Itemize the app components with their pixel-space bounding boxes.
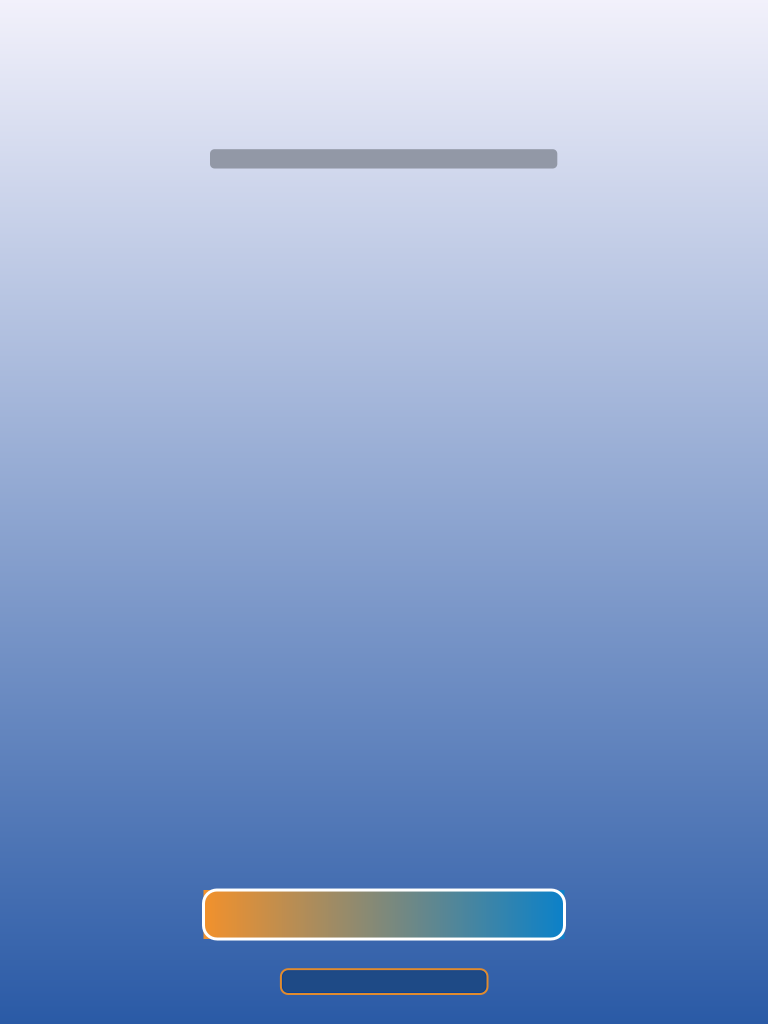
button[interactable]: Continue (203, 890, 564, 939)
button[interactable]: Secondary action (281, 969, 487, 994)
